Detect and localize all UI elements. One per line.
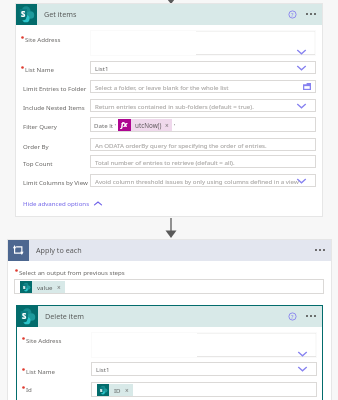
- staticText: Filter Query: [23, 122, 57, 130]
- button[interactable]: Help: [287, 311, 298, 322]
- staticText: ': [174, 121, 176, 129]
- staticText: Id: [26, 385, 32, 393]
- button[interactable]: S: [15, 3, 323, 25]
- button[interactable]: Apply to each: [7, 239, 332, 261]
- staticText: Limit Columns by View: [23, 178, 88, 186]
- staticText: ×: [165, 121, 169, 130]
- staticText: Select a folder, or leave blank for the …: [95, 83, 229, 91]
- staticText: S: [100, 387, 103, 393]
- button[interactable]: List1: [90, 61, 316, 74]
- staticText: fx: [121, 120, 128, 130]
- staticText: ×: [125, 386, 129, 395]
- staticText: ID: [114, 386, 121, 394]
- button[interactable]: fx: [118, 119, 172, 131]
- staticText: value: [37, 283, 53, 291]
- staticText: Limit Entries to Folder: [23, 84, 87, 92]
- button[interactable]: Total number of entries to retrieve (def…: [90, 155, 316, 168]
- staticText: List Name: [25, 65, 54, 73]
- button[interactable]: Select a folder, or leave blank for the …: [90, 80, 316, 93]
- staticText: Avoid column threshold issues by only us…: [95, 177, 299, 185]
- staticText: ×: [57, 283, 61, 292]
- button[interactable]: S: [16, 305, 323, 327]
- button[interactable]: An ODATA orderBy query for specifying th…: [90, 138, 316, 151]
- button[interactable]: List1: [91, 362, 317, 376]
- staticText: Hide advanced options: [23, 199, 90, 207]
- button[interactable]: More commands: [313, 244, 327, 256]
- button[interactable]: Avoid column threshold issues by only us…: [90, 174, 316, 187]
- staticText: An ODATA orderBy query for specifying th…: [95, 141, 267, 149]
- staticText: utcNow(): [135, 121, 162, 130]
- staticText: Order By: [23, 142, 49, 150]
- staticText: Site Address: [26, 336, 62, 344]
- button[interactable]: S: [91, 382, 317, 397]
- staticText: S: [21, 9, 26, 20]
- staticText: Get items: [44, 9, 77, 19]
- staticText: ?: [291, 313, 294, 321]
- button[interactable]: [91, 332, 317, 358]
- button[interactable]: Hide advanced options: [23, 199, 102, 207]
- staticText: Include Nested Items: [23, 103, 85, 111]
- staticText: List1: [96, 365, 110, 373]
- staticText: Total number of entries to retrieve (def…: [95, 158, 235, 166]
- staticText: Apply to each: [36, 245, 82, 255]
- staticText: S: [23, 284, 26, 290]
- button[interactable]: More commands: [304, 310, 318, 322]
- staticText: Delete item: [45, 311, 84, 321]
- staticText: Site Address: [25, 35, 61, 43]
- staticText: List Name: [26, 367, 55, 375]
- button[interactable]: S: [14, 279, 324, 294]
- staticText: S: [22, 311, 27, 322]
- button[interactable]: Date lt ': [90, 117, 316, 132]
- staticText: ?: [291, 11, 294, 19]
- staticText: Date lt ': [94, 121, 116, 129]
- button[interactable]: [90, 30, 316, 56]
- staticText: Top Count: [23, 159, 53, 167]
- button[interactable]: Help: [287, 9, 298, 20]
- button[interactable]: More commands: [304, 8, 318, 20]
- staticText: Select an output from previous steps: [19, 268, 125, 276]
- staticText: List1: [95, 64, 109, 72]
- button[interactable]: Return entries contained in sub-folders …: [90, 99, 316, 112]
- staticText: Return entries contained in sub-folders …: [95, 102, 254, 110]
